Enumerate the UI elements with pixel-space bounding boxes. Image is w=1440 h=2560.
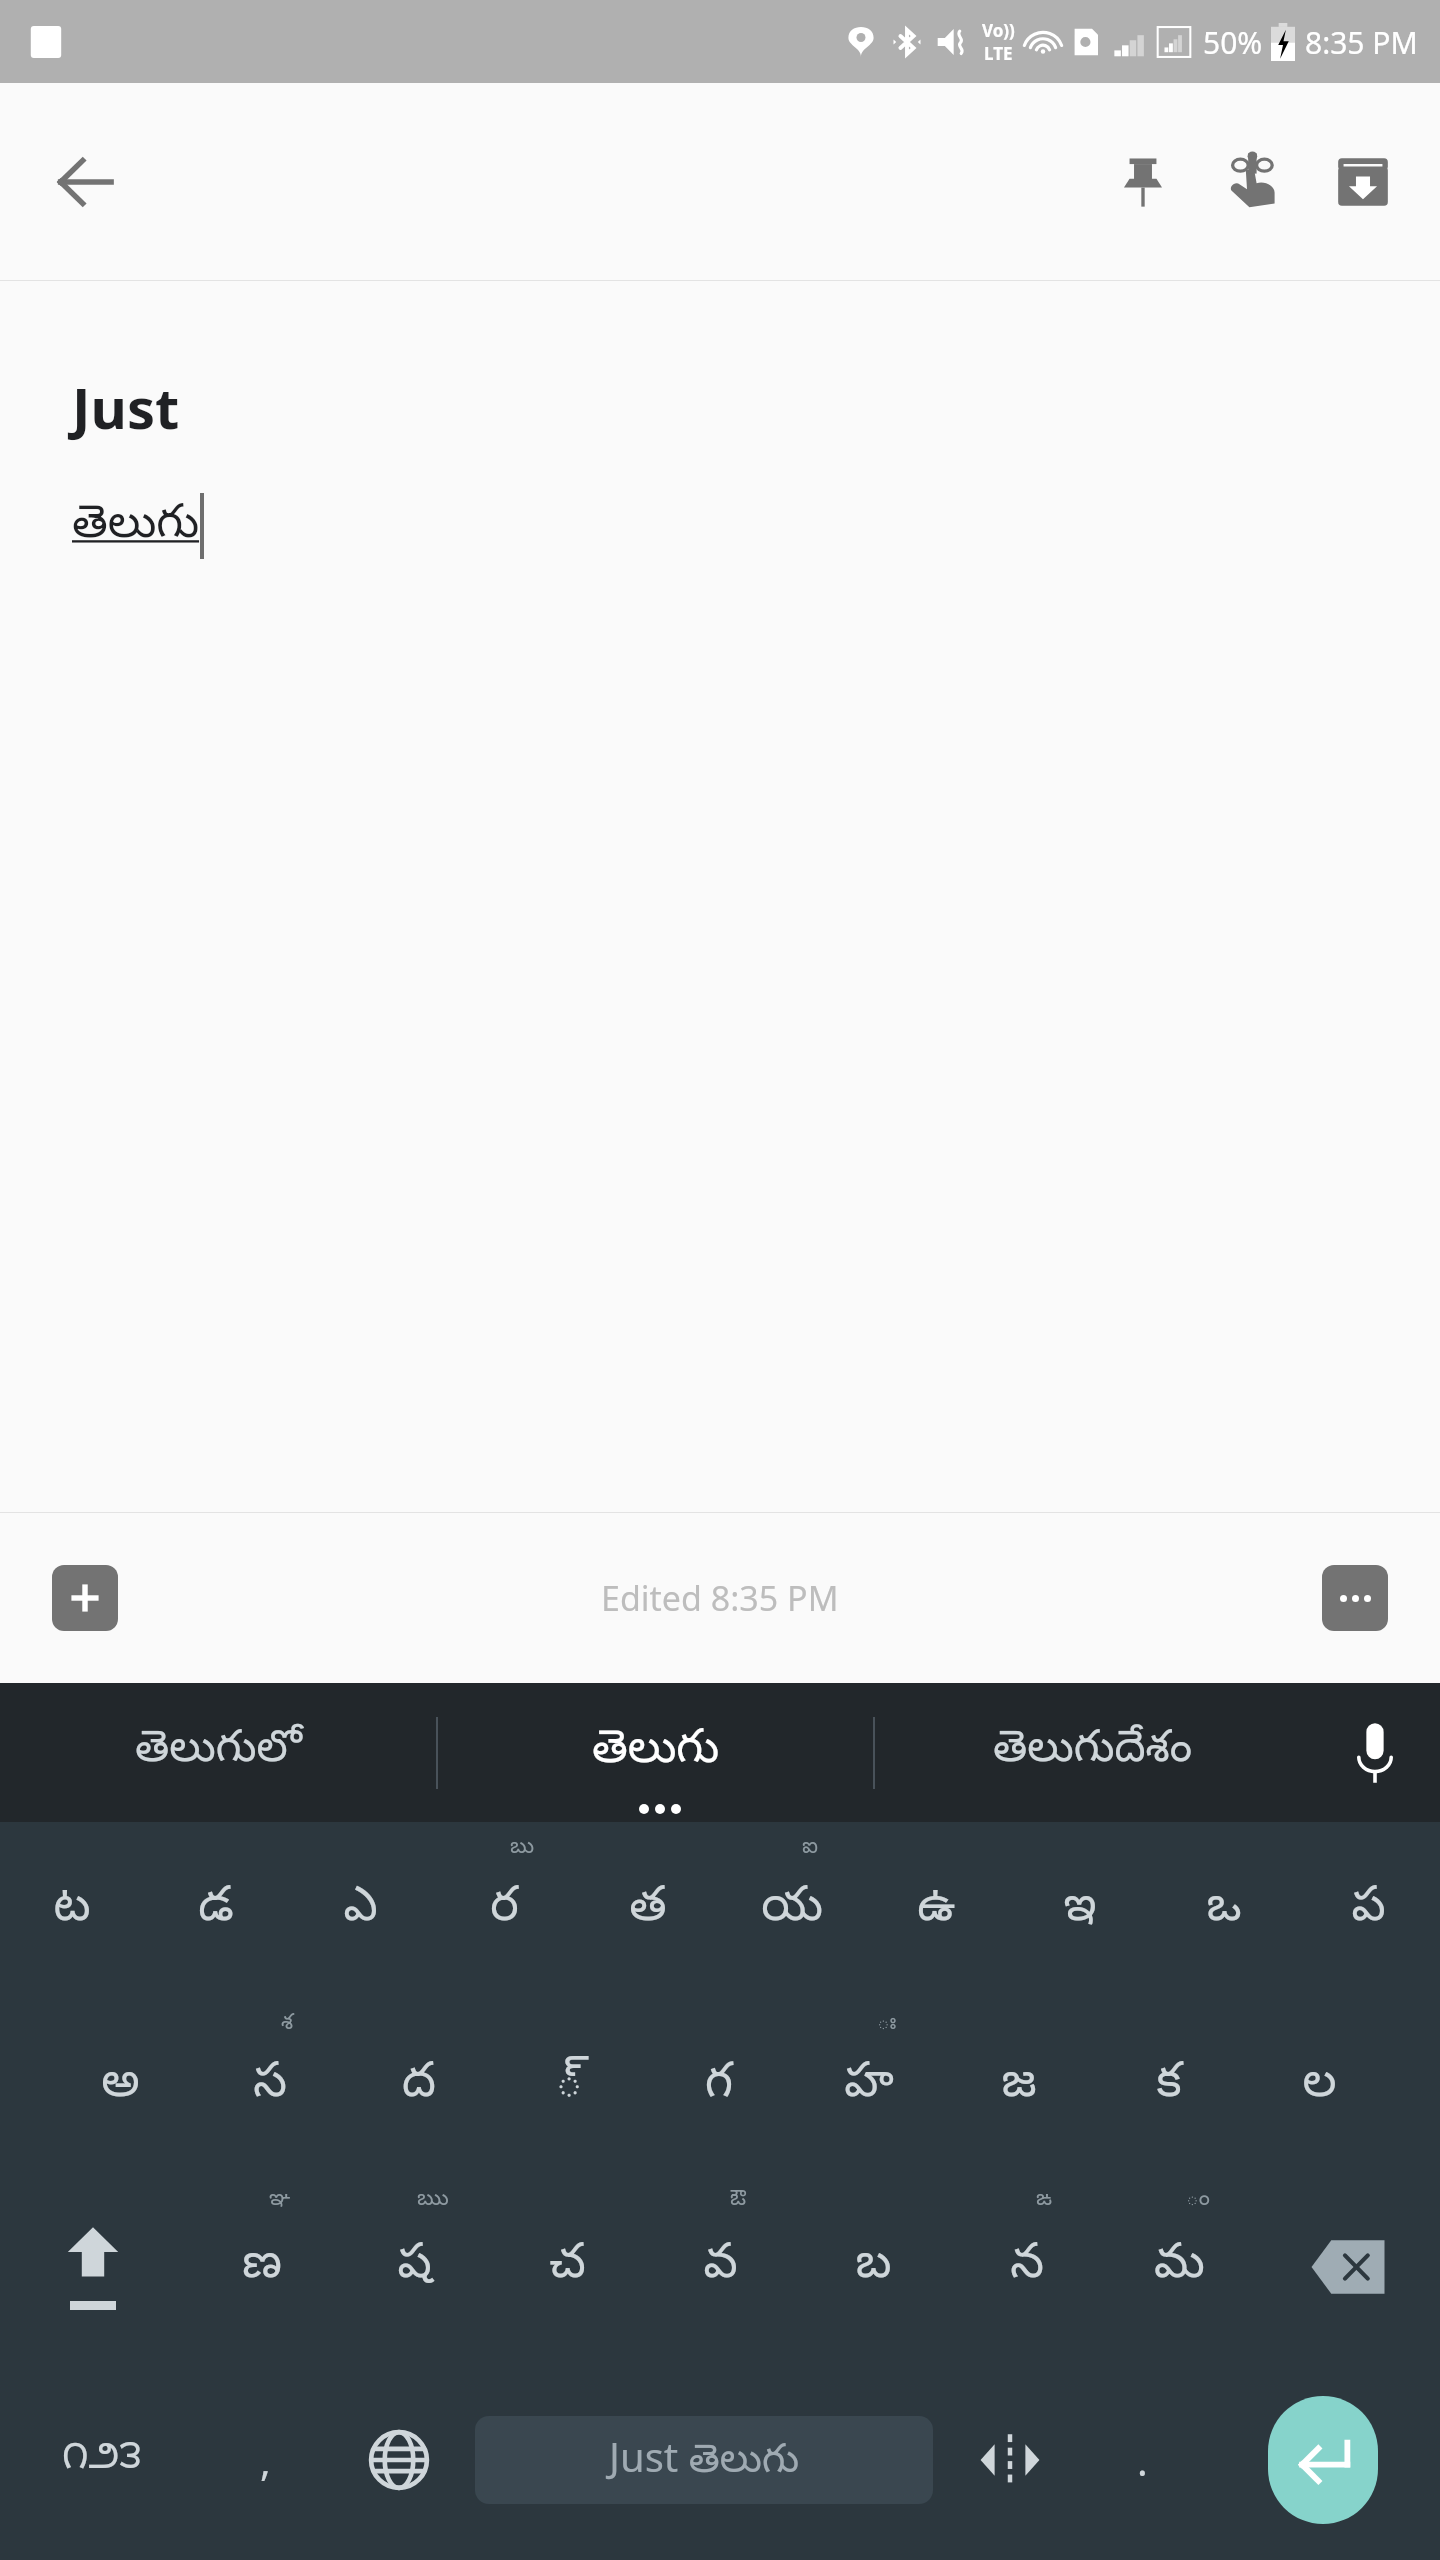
button[interactable]: Shift [0,2174,185,2360]
staticText: ద [402,2054,436,2119]
staticText: LTE [984,42,1013,65]
button[interactable]: బ [797,2174,950,2360]
staticText: బ [855,2235,892,2300]
button[interactable]: ద [344,1998,494,2174]
staticText: తెలుగులో [135,1723,302,1782]
staticText: ష [397,2235,432,2300]
staticText: ఉ [917,1878,956,1943]
button[interactable]: , [203,2360,328,2560]
staticText: ఐ [802,1834,818,1864]
button[interactable]: ః [794,1998,944,2174]
staticText: ఔ [730,2186,747,2216]
staticText: చ [549,2235,586,2300]
staticText: క [1156,2054,1182,2119]
staticText: న [1010,2235,1044,2300]
button[interactable]: అ [46,1998,195,2174]
staticText: ఇ [1063,1878,1097,1943]
button[interactable]: చ [491,2174,644,2360]
button[interactable]: Add [52,1565,118,1631]
button[interactable]: Backspace [1256,2174,1440,2360]
staticText: తెలుగు [72,497,200,559]
button[interactable]: జ [944,1998,1094,2174]
button[interactable]: ఋ [338,2174,491,2360]
staticText: ల [1302,2054,1337,2119]
button[interactable]: ఞ [185,2174,338,2360]
staticText: మ [1154,2235,1205,2300]
button[interactable]: ఉ [864,1822,1008,1998]
button[interactable]: ఒ [1152,1822,1296,1998]
staticText: ణ [242,2235,282,2300]
button[interactable]: More options [1322,1565,1388,1631]
button[interactable]: Move cursor [939,2360,1080,2560]
button[interactable]: Just తెలుగు [475,2416,933,2504]
button[interactable]: Enter [1205,2360,1440,2560]
staticText: ౧౨౩ [62,2433,142,2487]
staticText: ర [490,1878,519,1943]
staticText: గ [705,2054,733,2119]
staticText: Vo)) [982,19,1015,42]
staticText: స [253,2054,287,2119]
button[interactable]: Change language [328,2360,469,2560]
staticText: ్ [555,2054,583,2119]
staticText: 50% [1203,22,1263,63]
staticText: . [1137,2433,1148,2487]
staticText: వ [703,2235,738,2300]
button[interactable]: ఇ [1008,1822,1152,1998]
staticText: ఋ [417,2186,449,2216]
staticText: ః [877,2010,897,2040]
staticText: జ [1001,2054,1037,2119]
button[interactable]: ఔ [644,2174,797,2360]
staticText: 8:35 PM [1305,22,1418,63]
button[interactable]: తెలుగు [72,493,204,559]
button[interactable]: Pin [1088,127,1198,237]
button[interactable]: తెలుగుదేశం [875,1683,1310,1822]
staticText: బు [510,1834,535,1864]
staticText: Just తెలుగు [609,2429,800,2491]
button[interactable]: శ [195,1998,344,2174]
button[interactable]: తెలుగులో [0,1683,436,1822]
staticText: తెలుగుదేశం [993,1723,1193,1782]
staticText: హ [844,2054,894,2119]
button[interactable]: తెలుగు [438,1683,873,1822]
button[interactable]: Reminder [1198,127,1308,237]
staticText: ం [1186,2186,1210,2216]
button[interactable]: ఎ [288,1822,432,1998]
button[interactable]: ప [1296,1822,1440,1998]
button[interactable]: త [576,1822,720,1998]
staticText: త [629,1878,667,1943]
button[interactable]: Voice input [1310,1683,1440,1822]
button[interactable]: ల [1244,1998,1394,2174]
staticText: డ [198,1878,234,1943]
staticText: ట [53,1878,91,1943]
staticText: య [761,1878,823,1943]
staticText: ఙ [1036,2186,1053,2216]
staticText: ఎ [343,1878,378,1943]
staticText: అ [101,2054,140,2119]
staticText: ఞ [269,2186,291,2216]
button[interactable]: ఙ [950,2174,1103,2360]
button[interactable]: ం [1103,2174,1256,2360]
button[interactable]: ్ [494,1998,644,2174]
button[interactable]: డ [144,1822,288,1998]
button[interactable]: బు [432,1822,576,1998]
button[interactable]: Archive [1308,127,1418,237]
button[interactable]: ట [0,1822,144,1998]
button[interactable]: Just [72,369,180,445]
staticText: ఒ [1206,1878,1242,1943]
staticText: శ [281,2010,294,2040]
button[interactable]: ౧౨౩ [0,2360,203,2560]
staticText: తెలుగు [592,1722,720,1784]
button[interactable]: . [1080,2360,1205,2560]
button[interactable]: క [1094,1998,1244,2174]
button[interactable]: గ [644,1998,794,2174]
staticText: Edited 8:35 PM [601,1575,839,1621]
staticText: ప [1351,1878,1386,1943]
button[interactable]: ఐ [720,1822,864,1998]
staticText: , [260,2433,271,2487]
button[interactable]: Back [30,127,140,237]
